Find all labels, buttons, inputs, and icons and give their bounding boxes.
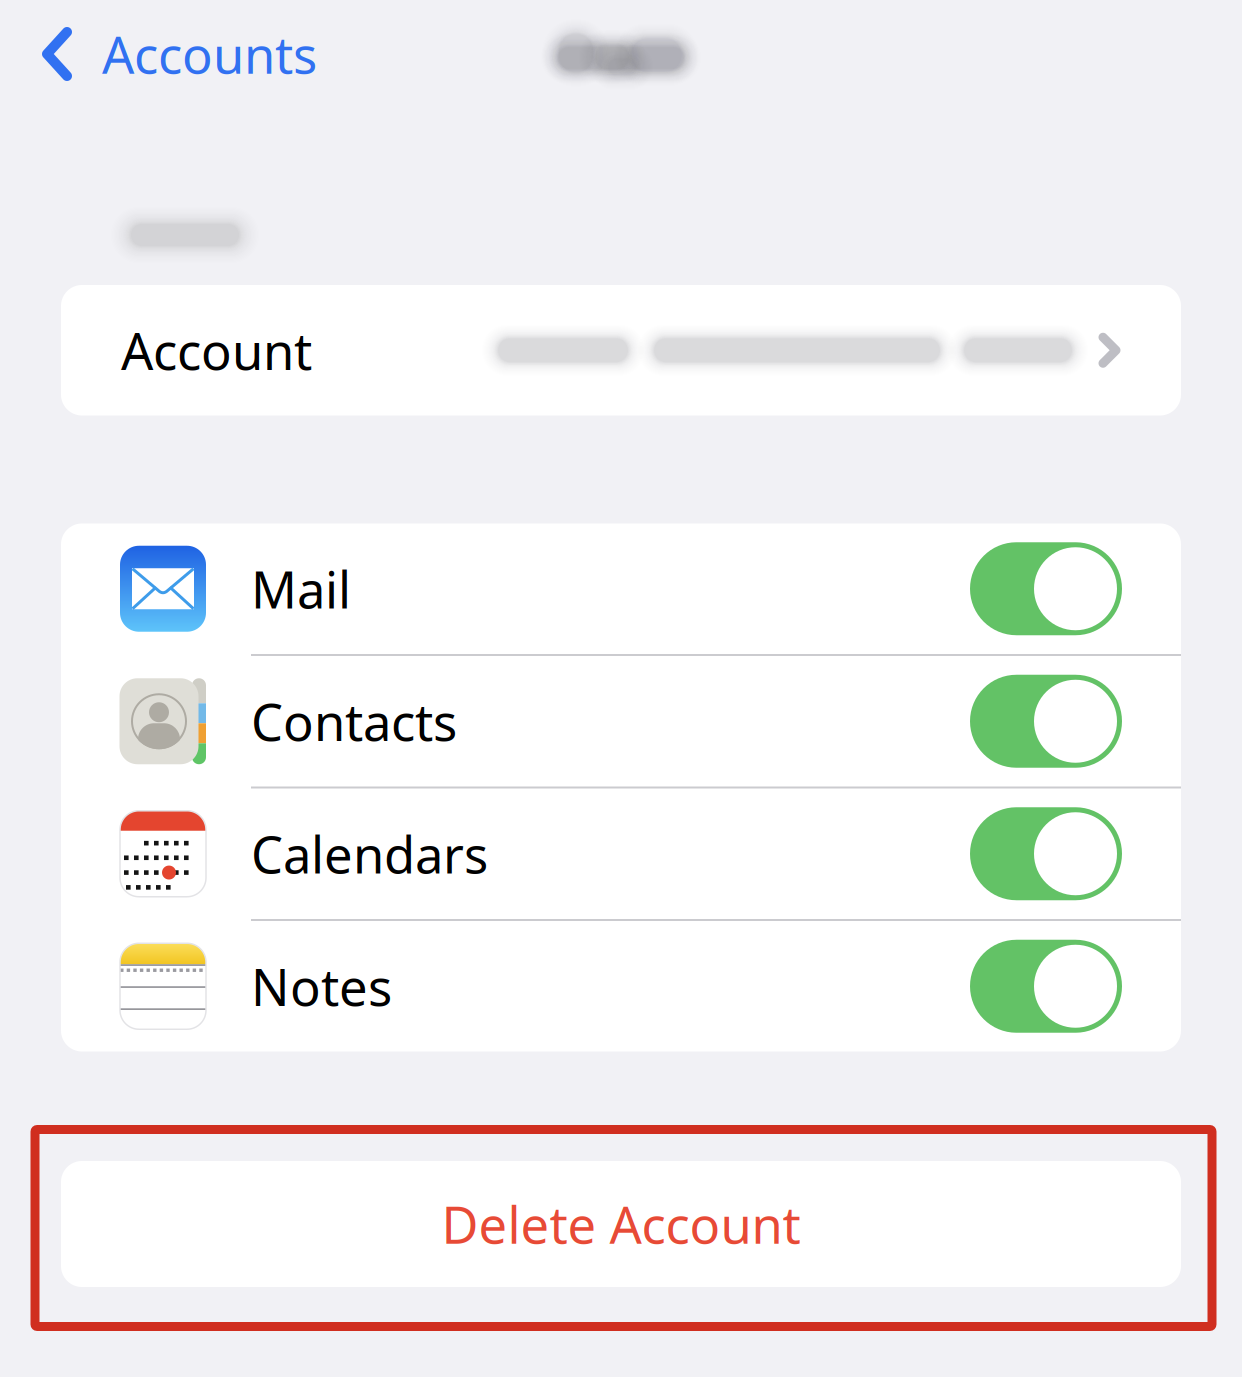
button[interactable]: Account [61,285,1181,415]
staticText: Contacts [251,688,457,755]
button[interactable]: Mail, on [970,542,1122,635]
button[interactable]: Contacts, on [970,675,1122,768]
staticText: Calendars [251,820,488,887]
button[interactable]: Delete Account [61,1161,1181,1287]
staticText: Notes [251,953,392,1020]
button[interactable]: Calendars, on [970,807,1122,900]
staticText: Account [121,317,312,384]
button[interactable]: Notes, on [970,940,1122,1033]
staticText: Mail [251,555,351,622]
button[interactable]: Calendars [61,788,1181,919]
staticText: Delete Account [441,1190,800,1258]
button[interactable]: Accounts [0,8,335,100]
button[interactable]: Notes [61,921,1181,1051]
button[interactable]: Contacts [61,656,1181,786]
staticText: Accounts [102,20,317,88]
button[interactable]: Mail [61,523,1181,654]
